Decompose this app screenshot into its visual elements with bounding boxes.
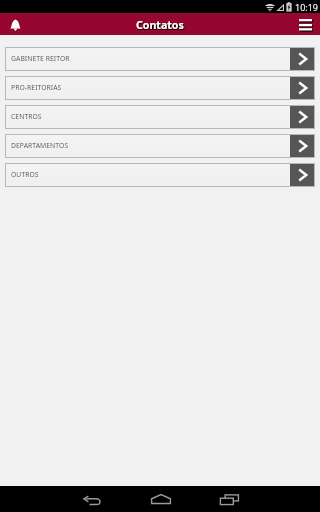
staticText: CENTROS (11, 112, 290, 121)
staticText: 10:19 (295, 1, 319, 13)
staticText: Contatos (137, 19, 185, 33)
button[interactable]: CENTROS (5, 105, 315, 129)
button[interactable]: OUTROS (5, 163, 315, 187)
staticText: Contatos (136, 18, 184, 32)
staticText: Contatos (136, 19, 184, 33)
button[interactable]: Back (74, 487, 109, 512)
button[interactable]: PRO-REITORIAS (5, 76, 315, 100)
staticText: PRO-REITORIAS (11, 83, 290, 92)
button[interactable]: GABINETE REITOR (5, 47, 315, 71)
staticText: GABINETE REITOR (11, 54, 290, 63)
staticText: Contatos (136, 19, 184, 33)
button[interactable]: Menu (299, 19, 312, 31)
button[interactable]: Recents (212, 486, 247, 512)
button[interactable]: Notifications (10, 19, 21, 31)
button[interactable]: Home (143, 486, 178, 512)
button[interactable]: DEPARTAMENTOS (5, 134, 315, 158)
staticText: Contatos (137, 18, 185, 32)
staticText: DEPARTAMENTOS (11, 141, 290, 150)
staticText: OUTROS (11, 170, 290, 179)
